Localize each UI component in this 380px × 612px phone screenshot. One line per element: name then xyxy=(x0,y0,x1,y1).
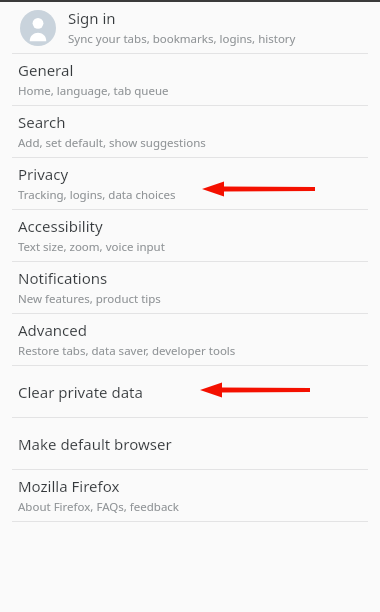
staticText: Privacy xyxy=(18,164,69,184)
button[interactable]: Search xyxy=(0,106,380,157)
staticText: Make default browser xyxy=(18,434,172,454)
staticText: Add, set default, show suggestions xyxy=(18,135,206,151)
staticText: Sign in xyxy=(68,8,116,28)
button[interactable]: General xyxy=(0,54,380,105)
button[interactable]: Clear private data xyxy=(0,366,380,417)
button[interactable]: Privacy xyxy=(0,158,380,209)
staticText: New features, product tips xyxy=(18,291,161,307)
staticText: Search xyxy=(18,112,66,132)
staticText: Advanced xyxy=(18,320,88,340)
staticText: Sync your tabs, bookmarks, logins, histo… xyxy=(68,31,296,47)
button[interactable]: Mozilla Firefox xyxy=(0,470,380,521)
staticText: Mozilla Firefox xyxy=(18,476,120,496)
staticText: Restore tabs, data saver, developer tool… xyxy=(18,343,236,359)
button[interactable]: Advanced xyxy=(0,314,380,365)
staticText: Text size, zoom, voice input xyxy=(18,239,165,255)
button[interactable]: Make default browser xyxy=(0,418,380,469)
button[interactable]: Sign in xyxy=(0,2,380,53)
staticText: Notifications xyxy=(18,268,108,288)
staticText: Home, language, tab queue xyxy=(18,83,169,99)
staticText: Accessibility xyxy=(18,216,103,236)
staticText: Tracking, logins, data choices xyxy=(18,187,176,203)
staticText: About Firefox, FAQs, feedback xyxy=(18,499,180,515)
button[interactable]: Accessibility xyxy=(0,210,380,261)
button[interactable]: Notifications xyxy=(0,262,380,313)
staticText: General xyxy=(18,60,74,80)
staticText: Clear private data xyxy=(18,382,143,402)
